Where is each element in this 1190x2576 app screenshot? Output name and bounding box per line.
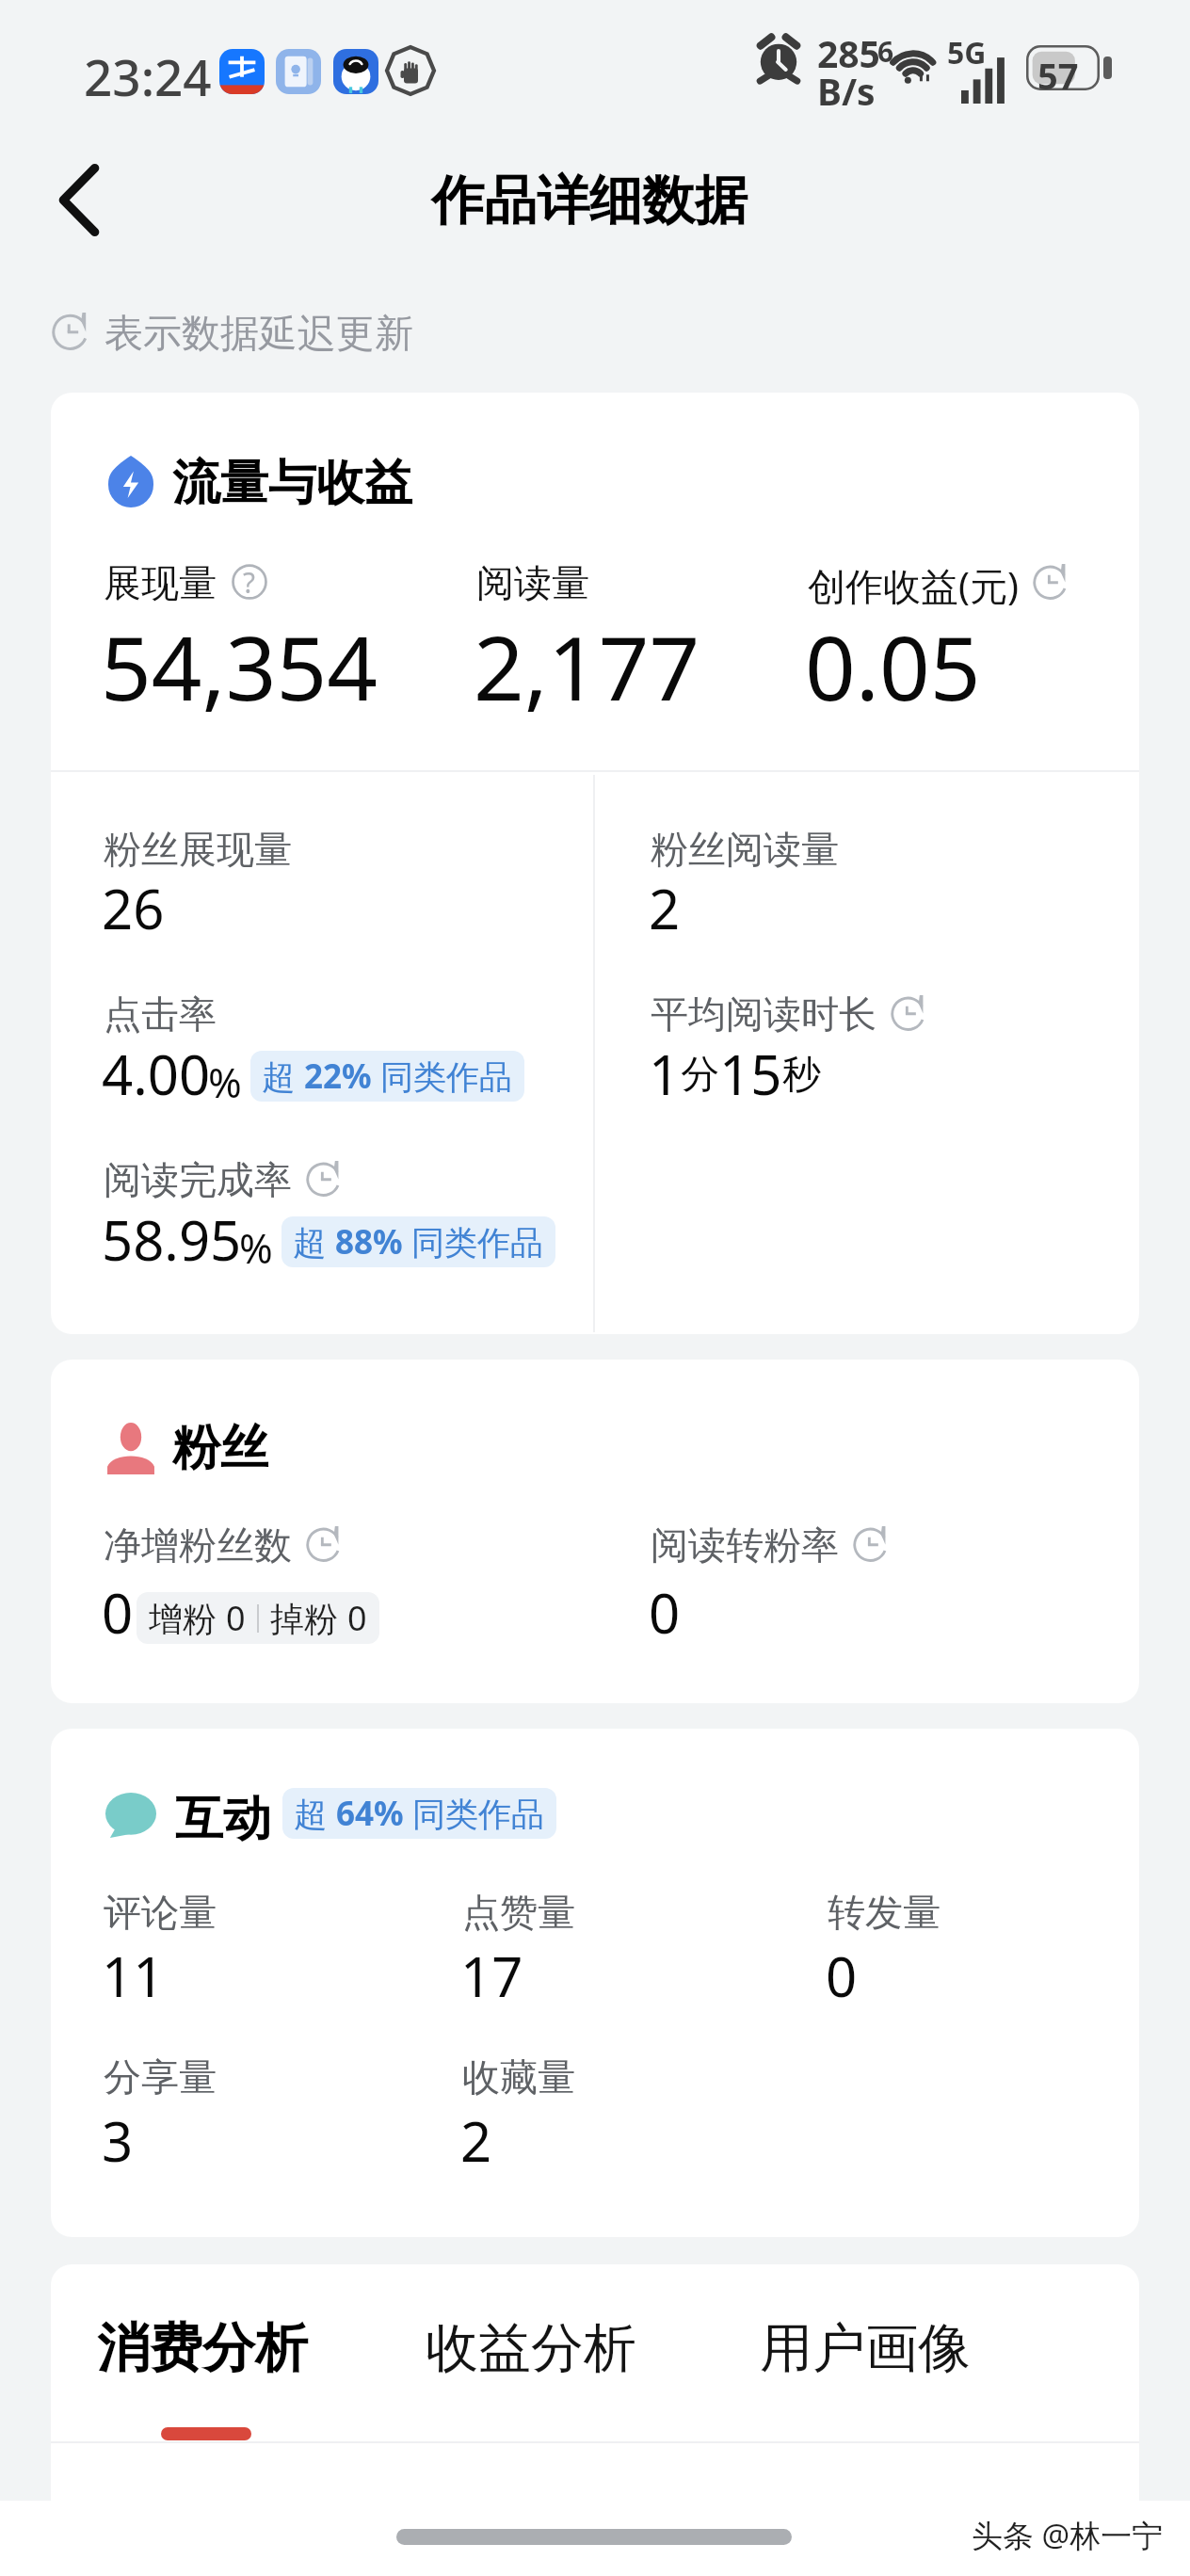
staticText: 4.00 <box>102 1037 211 1111</box>
staticText: 2,177 <box>474 606 700 727</box>
staticText: 阅读完成率 <box>104 1156 292 1203</box>
staticText: 流量与收益 <box>172 453 412 513</box>
staticText: 作品详细数据 <box>431 168 748 234</box>
staticText: 增粉 <box>149 1595 226 1641</box>
staticText: 互动 <box>175 1789 271 1849</box>
staticText: 23:24 <box>84 42 212 110</box>
staticText: 1 <box>649 1037 681 1111</box>
staticText: 用户画像 <box>760 2315 971 2382</box>
staticText: 54,354 <box>101 606 378 727</box>
button[interactable]: 消费分析 <box>97 2315 308 2382</box>
staticText: % <box>208 1055 242 1110</box>
staticText: 展现量 <box>104 559 217 606</box>
staticText: 57 <box>1037 51 1079 90</box>
staticText: 88% <box>335 1219 403 1264</box>
staticText: 粉丝阅读量 <box>651 826 839 873</box>
staticText: 评论量 <box>104 1889 217 1936</box>
staticText: 0 <box>102 1575 134 1650</box>
staticText: 分 <box>681 1051 719 1100</box>
staticText: 阅读量 <box>476 559 589 606</box>
staticText: 5G <box>947 32 987 73</box>
staticText: 点赞量 <box>462 1889 575 1936</box>
staticText: 阅读转粉率 <box>651 1521 839 1569</box>
staticText: 6 <box>877 32 894 71</box>
staticText: 分享量 <box>104 2053 217 2101</box>
staticText: 超 <box>262 1054 304 1099</box>
staticText: 64% <box>336 1791 404 1836</box>
staticText: 同类作品 <box>403 1219 544 1264</box>
staticText: 转发量 <box>828 1889 941 1936</box>
staticText: 2 <box>460 2103 492 2178</box>
staticText: 0 <box>649 1575 681 1650</box>
staticText: 17 <box>460 1939 523 2013</box>
staticText: ? <box>243 563 256 599</box>
staticText: 0 <box>226 1595 246 1641</box>
staticText: 收藏量 <box>462 2053 575 2101</box>
staticText: 同类作品 <box>372 1054 513 1099</box>
staticText: 超 <box>293 1219 335 1264</box>
staticText: 0 <box>347 1595 367 1641</box>
staticText: % <box>239 1220 273 1276</box>
staticText: 表示数据延迟更新 <box>105 310 413 359</box>
staticText: 创作收益(元) <box>808 559 1019 611</box>
staticText: 粉丝展现量 <box>104 826 292 873</box>
staticText: 粉丝 <box>172 1418 268 1478</box>
staticText: 掉粉 <box>270 1595 347 1641</box>
staticText: 22% <box>304 1054 372 1099</box>
staticText: 0 <box>826 1939 858 2013</box>
staticText: 头条 @林一宁 <box>972 2514 1164 2556</box>
staticText: 同类作品 <box>404 1791 545 1836</box>
staticText: 3 <box>102 2103 134 2178</box>
staticText: 平均阅读时长 <box>651 990 876 1038</box>
staticText: 净增粉丝数 <box>104 1521 292 1569</box>
staticText: 11 <box>102 1939 165 2013</box>
staticText: 0.05 <box>805 606 981 727</box>
staticText: 285 <box>817 28 880 78</box>
button[interactable]: 收益分析 <box>426 2315 636 2382</box>
staticText: 消费分析 <box>97 2315 308 2382</box>
button[interactable]: 用户画像 <box>760 2315 971 2382</box>
staticText: 收益分析 <box>426 2315 636 2382</box>
staticText: 58.95 <box>102 1202 242 1277</box>
staticText: 点击率 <box>104 990 217 1038</box>
button[interactable]: Back <box>23 143 136 256</box>
staticText: 2 <box>649 871 681 945</box>
staticText: 26 <box>102 871 165 945</box>
staticText: 秒 <box>782 1051 821 1100</box>
staticText: 15 <box>719 1037 782 1111</box>
staticText: 超 <box>294 1791 336 1836</box>
staticText: B/s <box>817 66 876 116</box>
